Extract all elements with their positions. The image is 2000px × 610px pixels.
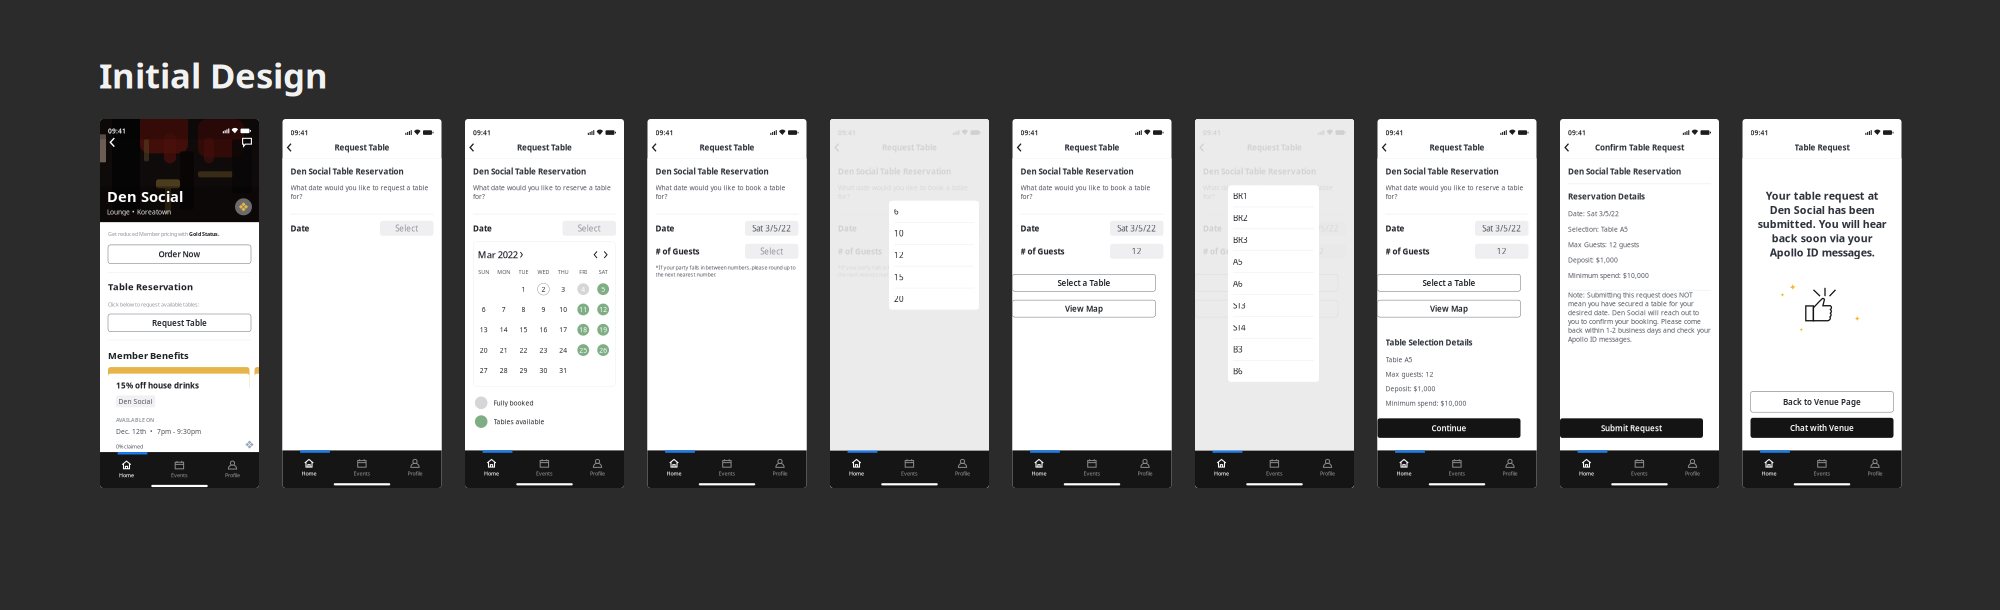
button[interactable]: Home [465, 456, 518, 480]
staticText: # of Guests [655, 246, 699, 257]
button[interactable]: Profile [1666, 456, 1719, 480]
button[interactable]: 12 [1475, 244, 1528, 259]
button[interactable]: Profile [1483, 456, 1536, 480]
button[interactable]: Events [1430, 456, 1483, 480]
staticText: 10 [559, 305, 567, 314]
button[interactable]: Events [153, 457, 206, 481]
staticText: Home [301, 470, 316, 477]
button[interactable]: Profile [388, 456, 441, 480]
button[interactable]: Back [282, 139, 296, 155]
button[interactable]: Previous month [591, 249, 601, 260]
button[interactable]: 12 [1292, 244, 1346, 259]
button[interactable]: Back [647, 139, 661, 155]
button[interactable]: Profile [1118, 456, 1171, 480]
button[interactable]: Home [1195, 456, 1248, 480]
button[interactable]: View Map [1377, 300, 1520, 317]
button[interactable]: Home [1742, 456, 1795, 480]
button[interactable]: Sat 3/5/22 [927, 221, 981, 236]
button[interactable]: Select [745, 244, 798, 259]
button[interactable]: Profile [1301, 456, 1354, 480]
staticText: Home [1214, 470, 1229, 477]
button[interactable]: Select [927, 244, 981, 259]
button[interactable]: Submit Request [1560, 418, 1703, 438]
button[interactable]: Sat 3/5/22 [1292, 221, 1346, 236]
button[interactable]: Mar 2022 [478, 248, 523, 261]
button[interactable]: Home [1560, 456, 1613, 480]
button[interactable]: Back [1560, 139, 1574, 155]
button[interactable]: Messages [240, 135, 254, 149]
staticText: Profile [1867, 470, 1882, 477]
button[interactable]: Home [100, 457, 153, 481]
button[interactable]: Home [1377, 456, 1430, 480]
staticText: What date would you like to reserve a ta… [473, 183, 611, 201]
button[interactable]: Order Now [108, 245, 251, 263]
button[interactable]: Next month [601, 249, 611, 260]
staticText: 16 [539, 325, 547, 334]
button[interactable]: Select [562, 221, 616, 236]
button[interactable]: Request Table [108, 314, 251, 332]
button[interactable]: Events [1065, 456, 1118, 480]
button[interactable]: Continue [1377, 418, 1520, 438]
button[interactable]: Home [282, 456, 335, 480]
staticText: Den Social [119, 397, 153, 406]
button[interactable]: Back [1012, 139, 1026, 155]
staticText: Events [718, 470, 735, 477]
staticText: Events [536, 470, 553, 477]
staticText: Initial Design [99, 52, 328, 98]
staticText: 6 [482, 305, 486, 314]
button[interactable]: View Map [1195, 300, 1338, 317]
button[interactable]: Profile [753, 456, 806, 480]
button[interactable]: Events [518, 456, 571, 480]
staticText: A5 [1233, 256, 1243, 267]
staticText: # of Guests [1385, 246, 1429, 257]
button[interactable]: Back [830, 139, 844, 155]
button[interactable]: Events [335, 456, 388, 480]
staticText: 23 [539, 346, 547, 354]
staticText: Chat with Venue [1790, 422, 1854, 433]
button[interactable]: Back [1195, 139, 1209, 155]
button[interactable]: Back [105, 135, 120, 149]
button[interactable]: Home [830, 456, 883, 480]
button[interactable]: Profile [1848, 456, 1901, 480]
staticText: What date would you like to request a ta… [290, 183, 428, 201]
button[interactable]: Events [1248, 456, 1301, 480]
button[interactable]: Events [700, 456, 753, 480]
staticText: Den Social Table Reservation [655, 166, 768, 177]
button[interactable]: Back [1377, 139, 1391, 155]
button[interactable]: Profile [206, 457, 259, 481]
staticText: Continue [1431, 423, 1466, 433]
staticText: Events [1813, 470, 1830, 477]
button[interactable]: 12 [1110, 244, 1163, 259]
button[interactable]: Events [1795, 456, 1848, 480]
button[interactable]: Events [1613, 456, 1666, 480]
staticText: Profile [1502, 470, 1517, 477]
staticText: 8 [522, 305, 526, 314]
staticText: 27 [480, 366, 488, 375]
button[interactable]: Select a Table [1012, 274, 1155, 291]
button[interactable]: Select [380, 221, 433, 236]
staticText: 3 [561, 285, 565, 294]
button[interactable]: Events [883, 456, 936, 480]
button[interactable]: Back to Venue Page [1750, 391, 1893, 412]
button[interactable]: Chat with Venue [1750, 418, 1893, 438]
button[interactable]: Select a Table [1195, 274, 1338, 291]
staticText: Request Table [1064, 142, 1119, 153]
staticText: Lounge • Koreatown [107, 207, 171, 216]
button[interactable]: Sat 3/5/22 [1475, 221, 1528, 236]
button[interactable]: Back [465, 139, 479, 155]
button[interactable]: Select a Table [1377, 274, 1520, 291]
button[interactable]: Profile [936, 456, 989, 480]
button[interactable]: Profile [571, 456, 624, 480]
button[interactable]: Sat 3/5/22 [745, 221, 798, 236]
staticText: What date would you like to reserve a ta… [1385, 183, 1523, 201]
staticText: Date [473, 223, 492, 234]
staticText: Confirm Table Request [1595, 142, 1684, 153]
button[interactable]: Sat 3/5/22 [1110, 221, 1163, 236]
staticText: 13 [480, 325, 488, 334]
button[interactable]: Home [647, 456, 700, 480]
staticText: Select a Table [1057, 277, 1110, 288]
staticText: 09:41 [1385, 128, 1403, 137]
button[interactable]: Home [1012, 456, 1065, 480]
button[interactable]: View Map [1012, 300, 1155, 317]
